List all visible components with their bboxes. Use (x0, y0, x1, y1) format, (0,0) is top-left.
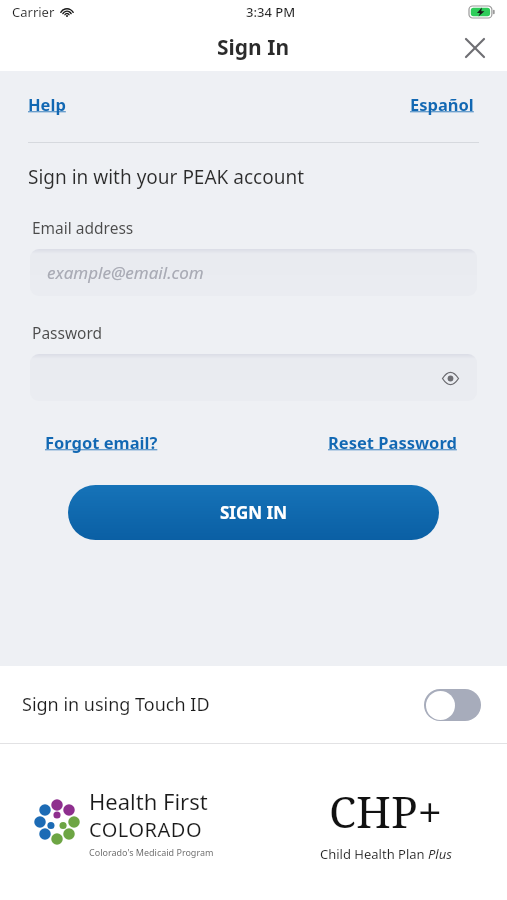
button[interactable]: Español (410, 93, 479, 115)
button[interactable]: Reset Password (328, 431, 462, 453)
staticText: COLORADO (89, 816, 202, 843)
staticText: Help (28, 93, 66, 115)
other: Show password (437, 365, 463, 391)
staticText: Plus (428, 845, 452, 863)
staticText: Password (32, 322, 103, 343)
button[interactable]: SIGN IN (68, 485, 439, 540)
staticText: Sign in with your PEAK account (28, 164, 305, 190)
button[interactable]: Forgot email? (45, 431, 162, 453)
staticText: Colorado's Medicaid Program (89, 846, 214, 858)
button[interactable]: example@email.com (30, 249, 477, 296)
staticText: CHP+ (329, 781, 443, 841)
staticText: Email address (32, 217, 134, 238)
button[interactable]: Sign in using Touch ID (0, 666, 507, 743)
button[interactable]: Show password (30, 354, 477, 401)
staticText: Forgot email? (45, 431, 162, 453)
staticText: Sign In (217, 33, 290, 62)
staticText: example@email.com (47, 261, 204, 284)
staticText: Sign in using Touch ID (22, 692, 210, 717)
staticText: SIGN IN (220, 501, 287, 524)
staticText: 3:34 PM (246, 3, 296, 21)
staticText: Health First (89, 786, 208, 816)
button[interactable]: Sign in using Touch ID toggle (424, 689, 481, 721)
button[interactable]: Close (457, 30, 493, 66)
button[interactable]: Help (28, 93, 66, 115)
staticText: Carrier (12, 3, 55, 21)
staticText: Child Health Plan (320, 845, 428, 863)
staticText: Español (410, 93, 479, 115)
staticText: Reset Password (328, 431, 462, 453)
